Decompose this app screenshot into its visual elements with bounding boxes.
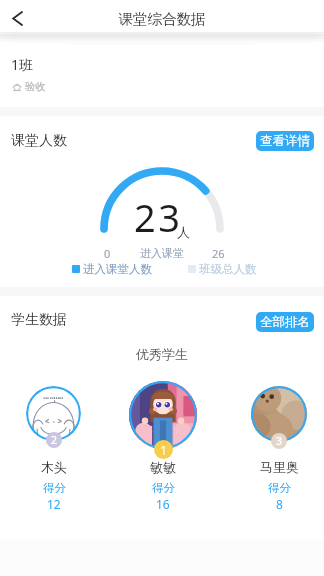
staticText: 课堂综合数据 [0,10,324,28]
staticText: 木头 [41,459,67,475]
button[interactable]: 敏敏 [123,459,203,512]
staticText: 得分 [152,481,175,495]
staticText: 人 [177,224,190,240]
staticText: 进入课堂人数 [83,262,152,276]
button[interactable]: 木头 [14,459,94,512]
staticText: 敏敏 [150,459,176,475]
staticText: 全部排名 [260,314,310,330]
staticText: 马里奥 [260,459,299,475]
button[interactable]: 马里奥 [239,459,319,512]
staticText: 优秀学生 [0,346,324,362]
staticText: 1班 [11,55,34,74]
button[interactable]: Back [4,5,30,31]
staticText: 23 [134,191,183,243]
staticText: 得分 [268,481,291,495]
button[interactable]: 3 [251,386,307,442]
staticText: 3 [276,434,283,448]
staticText: 验收 [25,80,46,93]
staticText: 班级总人数 [199,262,257,276]
staticText: 0 [104,246,111,259]
staticText: 课堂人数 [11,132,67,150]
staticText: 2 [51,433,58,447]
staticText: 得分 [43,481,66,495]
button[interactable]: 查看详情 [256,131,314,151]
staticText: 26 [212,246,225,259]
button[interactable]: 2 [26,386,81,441]
staticText: 16 [156,496,170,512]
staticText: 8 [276,496,283,512]
staticText: 12 [47,496,61,512]
staticText: 进入课堂 [140,246,184,259]
staticText: 查看详情 [260,133,310,149]
staticText: 学生数据 [11,311,67,329]
button[interactable]: 全部排名 [256,312,314,332]
staticText: 1 [160,442,167,458]
button[interactable]: 1 [129,381,197,449]
